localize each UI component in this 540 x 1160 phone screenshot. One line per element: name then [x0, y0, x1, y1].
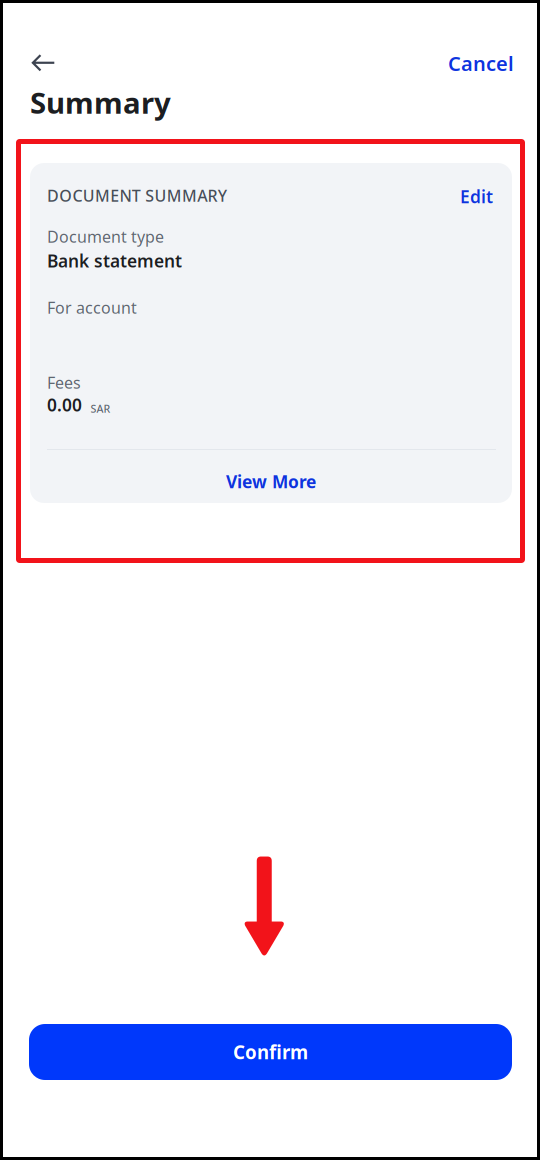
button[interactable]: Cancel [438, 42, 524, 85]
staticText: For account [47, 297, 137, 318]
button[interactable]: View More [30, 455, 512, 508]
button[interactable]: Back [19, 43, 66, 82]
staticText: Cancel [448, 50, 514, 77]
staticText: DOCUMENT SUMMARY [47, 185, 227, 206]
staticText: 0.00 [47, 393, 82, 416]
staticText: Summary [30, 83, 171, 122]
staticText: Document type [47, 226, 164, 247]
staticText: View More [226, 470, 316, 493]
staticText: Fees [47, 372, 81, 393]
staticText: Confirm [233, 1040, 308, 1064]
staticText: Bank statement [47, 249, 182, 272]
staticText: SAR [90, 402, 110, 416]
button[interactable]: Confirm [29, 1024, 512, 1080]
button[interactable]: Edit [452, 179, 501, 214]
staticText: Edit [460, 185, 493, 208]
